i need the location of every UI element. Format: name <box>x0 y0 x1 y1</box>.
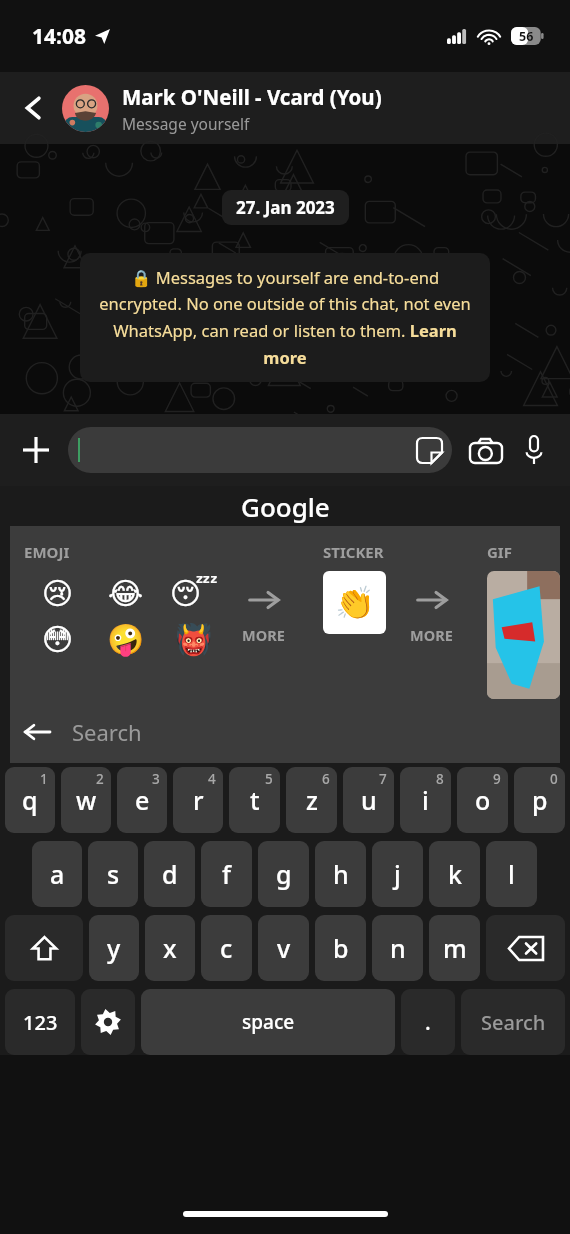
button[interactable]: l <box>486 841 537 907</box>
button[interactable]: d <box>144 841 195 907</box>
staticText: i <box>422 783 429 817</box>
other: More <box>247 583 281 617</box>
staticText: 😳 <box>42 622 74 657</box>
staticText: p <box>532 783 548 817</box>
staticText: c <box>220 931 233 965</box>
staticText: 6 <box>322 770 330 788</box>
button[interactable]: j <box>372 841 423 907</box>
button[interactable]: 😂 <box>92 570 160 616</box>
staticText: MORE <box>410 625 453 645</box>
button[interactable]: Back <box>12 86 56 130</box>
staticText: a <box>50 857 65 891</box>
button[interactable]: 😳 <box>24 616 92 662</box>
button[interactable]: m <box>429 915 480 981</box>
button[interactable]: 👹 <box>160 616 228 662</box>
button[interactable]: 🔒 Messages to yourself are end-to-end en… <box>80 253 490 382</box>
button[interactable]: c <box>201 915 252 981</box>
button[interactable]: Attach <box>12 426 60 474</box>
staticText: 8 <box>436 770 444 788</box>
staticText: 😢 <box>42 576 74 611</box>
button[interactable]: n <box>372 915 423 981</box>
staticText: 5 <box>265 770 273 788</box>
staticText: 🔒 Messages to yourself are end-to-end en… <box>94 266 476 369</box>
other: Sticker <box>417 438 442 463</box>
button[interactable]: 👏 <box>323 571 386 634</box>
button[interactable]: Back <box>10 701 560 763</box>
button[interactable] <box>487 571 560 699</box>
staticText: s <box>107 857 120 891</box>
staticText: 🤪 <box>107 622 145 657</box>
button[interactable]: 123 <box>5 989 75 1055</box>
button[interactable]: r <box>173 767 223 833</box>
button[interactable]: Camera <box>462 426 510 474</box>
button[interactable]: x <box>145 915 195 981</box>
staticText: MORE <box>242 625 285 645</box>
button[interactable]: f <box>201 841 252 907</box>
button[interactable]: e <box>117 767 167 833</box>
button[interactable]: p <box>514 767 565 833</box>
button[interactable]: 😴 <box>160 570 228 616</box>
staticText: 😴 <box>170 576 219 611</box>
staticText: x <box>163 931 177 965</box>
staticText: n <box>390 931 406 965</box>
button[interactable]: w <box>61 767 111 833</box>
button[interactable]: b <box>315 915 366 981</box>
staticText: GIF <box>487 542 512 562</box>
button[interactable]: q <box>5 767 55 833</box>
staticText: Mark O'Neill - Vcard (You) <box>122 83 382 111</box>
staticText: 4 <box>208 770 216 788</box>
staticText: j <box>394 857 401 891</box>
staticText: 14:08 <box>32 22 86 51</box>
staticText: 1 <box>40 770 48 788</box>
staticText: 27. Jan 2023 <box>236 196 335 219</box>
button[interactable]: Sticker <box>68 427 452 473</box>
button[interactable]: Search <box>461 989 565 1055</box>
staticText: STICKER <box>323 542 384 562</box>
button[interactable]: Settings <box>81 989 135 1055</box>
staticText: q <box>22 783 38 817</box>
staticText: y <box>107 931 121 965</box>
staticText: m <box>443 931 467 965</box>
button[interactable]: s <box>88 841 138 907</box>
button[interactable]: k <box>429 841 480 907</box>
button[interactable]: u <box>343 767 394 833</box>
button[interactable]: y <box>89 915 139 981</box>
staticText: 😂 <box>108 576 144 611</box>
staticText: u <box>361 783 377 817</box>
button[interactable]: g <box>258 841 309 907</box>
staticText: 9 <box>493 770 501 788</box>
staticText: EMOJI <box>24 542 70 562</box>
button[interactable]: Mark O'Neill - Vcard (You) <box>62 72 554 144</box>
button[interactable]: space <box>141 989 395 1055</box>
button[interactable]: t <box>229 767 280 833</box>
button[interactable]: . <box>401 989 455 1055</box>
button[interactable]: z <box>286 767 337 833</box>
staticText: t <box>250 783 260 817</box>
staticText: 123 <box>23 1009 58 1036</box>
button[interactable]: i <box>400 767 451 833</box>
staticText: b <box>333 931 349 965</box>
button[interactable]: o <box>457 767 508 833</box>
other: More <box>415 583 449 617</box>
staticText: e <box>135 783 150 817</box>
staticText: Message yourself <box>122 113 250 134</box>
staticText: Google <box>241 489 330 524</box>
staticText: 56 <box>519 28 534 45</box>
staticText: w <box>76 783 97 817</box>
staticText: d <box>162 857 178 891</box>
other: Back <box>10 705 64 759</box>
staticText: Search <box>481 1009 546 1036</box>
button[interactable]: Backspace <box>486 915 565 981</box>
button[interactable]: v <box>258 915 309 981</box>
staticText: r <box>193 783 204 817</box>
button[interactable]: 🤪 <box>92 616 160 662</box>
staticText: 0 <box>550 770 558 788</box>
staticText: h <box>333 857 349 891</box>
button[interactable]: a <box>32 841 82 907</box>
button[interactable]: h <box>315 841 366 907</box>
button[interactable]: Voice message <box>510 426 558 474</box>
button[interactable]: 😢 <box>24 570 92 616</box>
staticText: . <box>425 1008 431 1037</box>
staticText: z <box>306 783 318 817</box>
button[interactable]: Shift <box>5 915 83 981</box>
